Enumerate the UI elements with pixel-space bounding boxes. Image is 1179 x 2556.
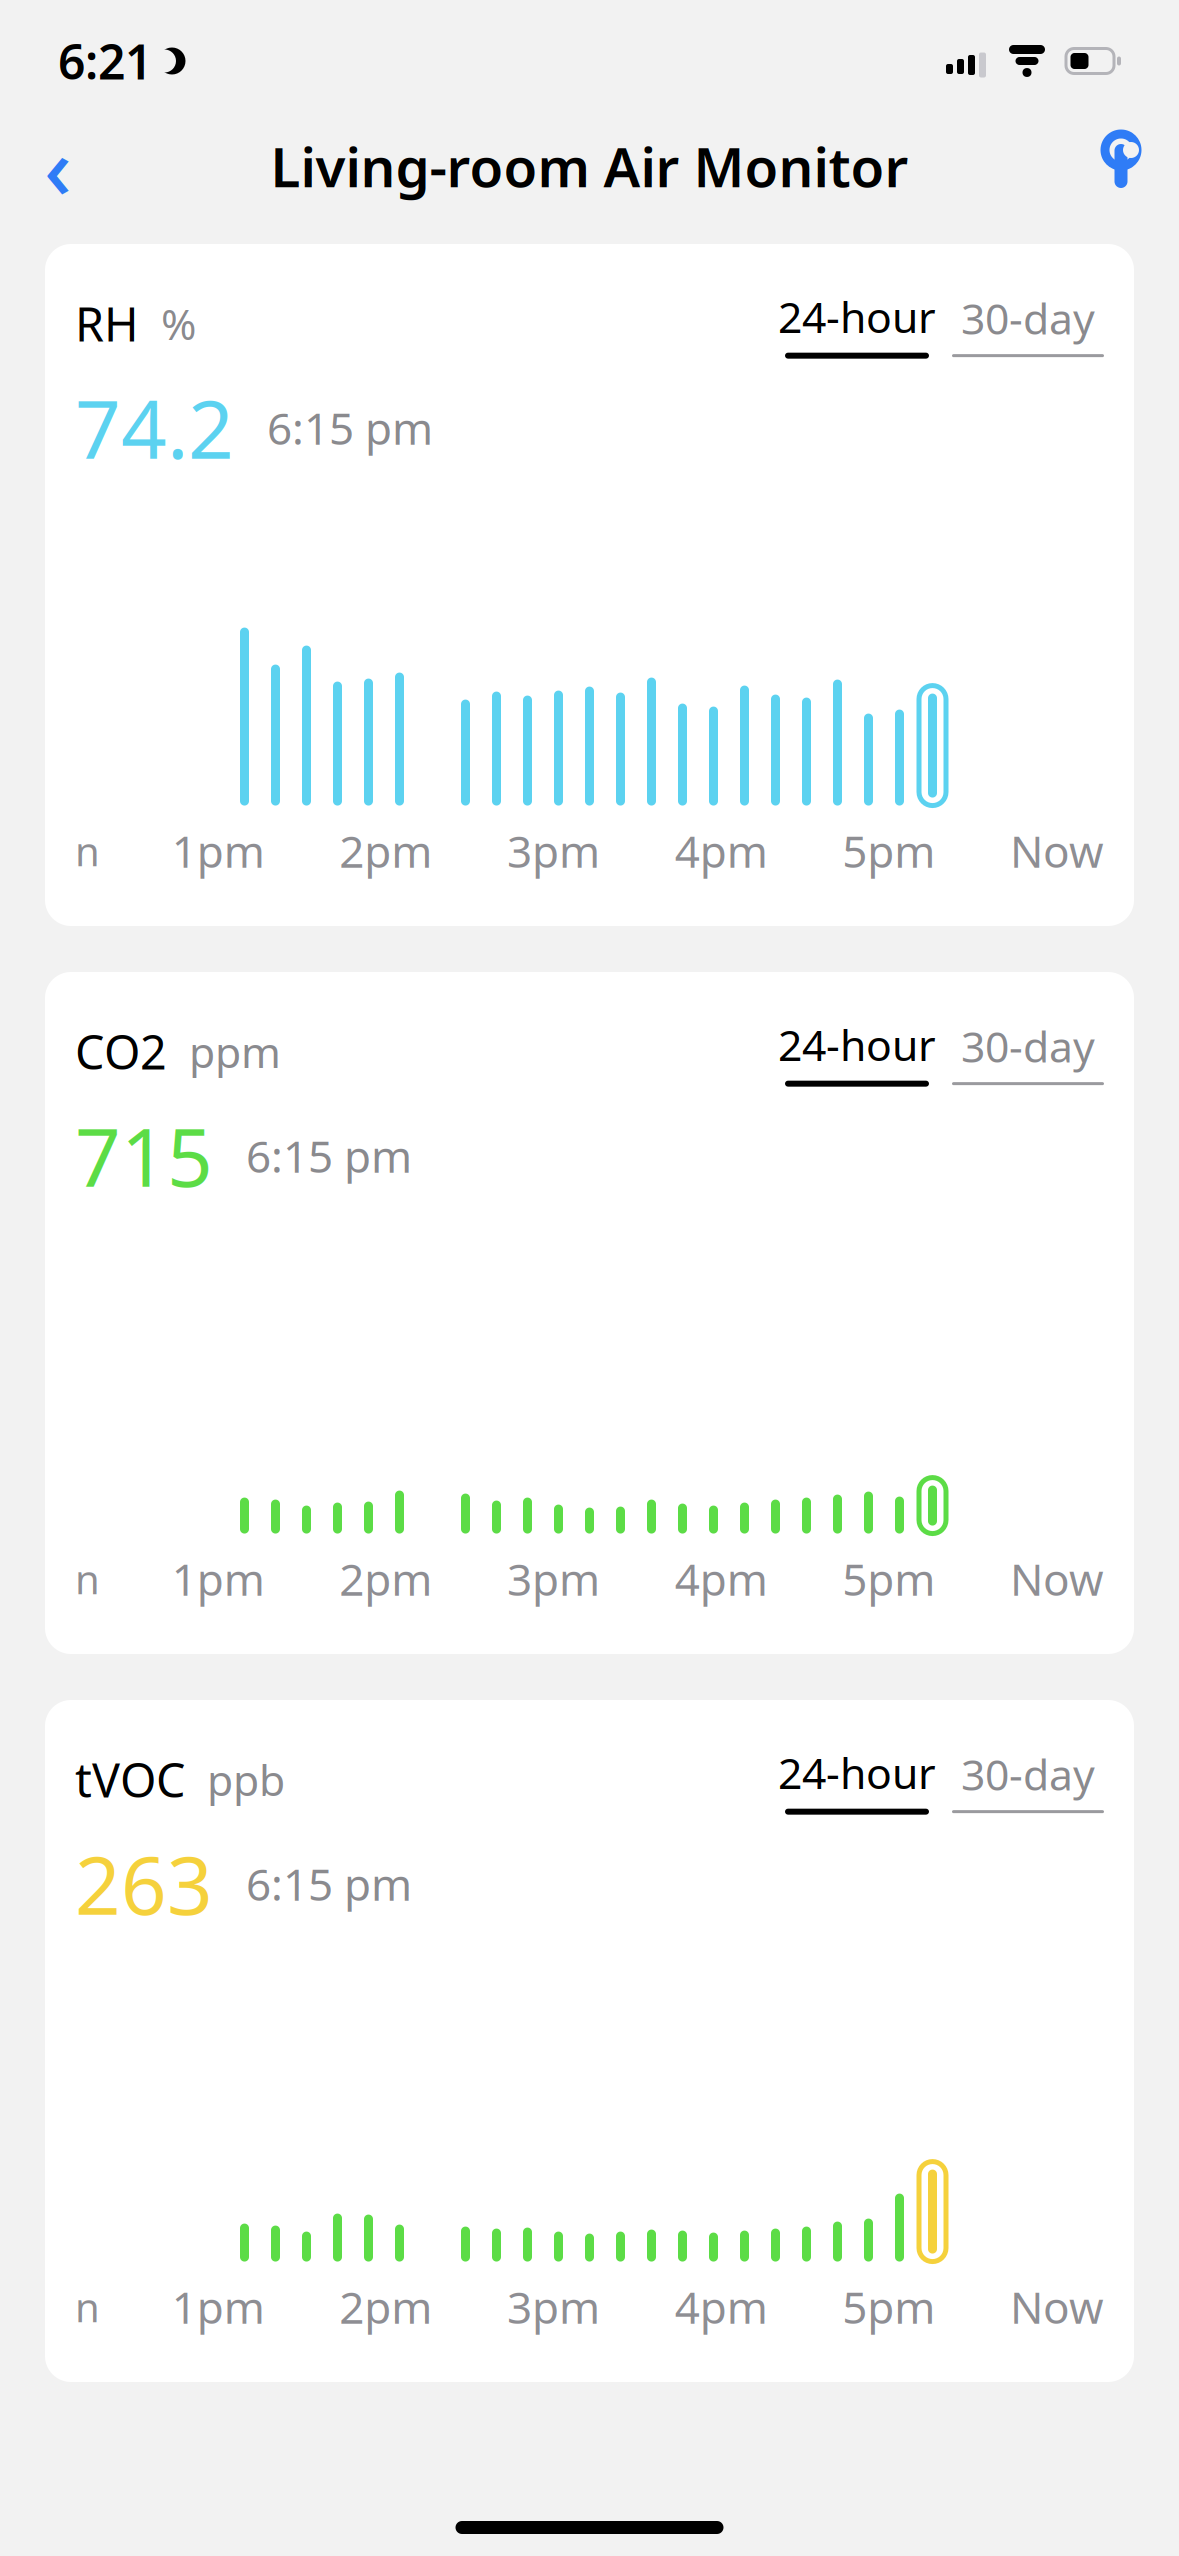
staticText: 74.2 xyxy=(75,375,234,481)
staticText: Now xyxy=(1010,1550,1104,1608)
staticText: 5pm xyxy=(842,822,935,880)
button[interactable]: 30-day xyxy=(952,1745,1104,1813)
staticText: ppm xyxy=(167,1023,281,1080)
staticText: 1pm xyxy=(172,822,265,880)
staticText: CO2 xyxy=(75,1020,167,1082)
staticText: 2pm xyxy=(339,1550,432,1608)
staticText: Now xyxy=(1010,822,1104,880)
staticText: tVOC xyxy=(75,1748,185,1810)
staticText: n xyxy=(75,824,100,877)
staticText: RH xyxy=(75,292,139,354)
staticText: 3pm xyxy=(507,822,600,880)
staticText: ppb xyxy=(185,1751,285,1808)
staticText: 6:15 pm xyxy=(234,399,433,457)
staticText: 3pm xyxy=(507,2278,600,2336)
staticText: 6:21 xyxy=(58,29,152,93)
staticText: 6:15 pm xyxy=(213,1127,412,1185)
button[interactable]: 24-hour xyxy=(778,1744,936,1815)
staticText: 5pm xyxy=(842,1550,935,1608)
staticText: 30-day xyxy=(961,1017,1095,1074)
staticText: 263 xyxy=(75,1831,213,1937)
staticText: 24-hour xyxy=(778,1016,936,1073)
button[interactable]: Settings xyxy=(1089,123,1153,209)
button[interactable]: 24-hour xyxy=(778,1016,936,1087)
staticText: 6:15 pm xyxy=(213,1855,412,1913)
staticText: 24-hour xyxy=(778,288,936,345)
button[interactable]: 24-hour xyxy=(778,288,936,359)
staticText: n xyxy=(75,1552,100,1605)
staticText: 2pm xyxy=(339,2278,432,2336)
staticText: Living-room Air Monitor xyxy=(270,130,908,202)
button[interactable]: 30-day xyxy=(952,1017,1104,1085)
staticText: 24-hour xyxy=(778,1744,936,1801)
staticText: 4pm xyxy=(675,2278,768,2336)
staticText: 3pm xyxy=(507,1550,600,1608)
staticText: 715 xyxy=(75,1103,213,1209)
staticText: % xyxy=(139,295,196,352)
staticText: 4pm xyxy=(675,1550,768,1608)
button[interactable]: 30-day xyxy=(952,289,1104,357)
staticText: 30-day xyxy=(961,289,1095,346)
staticText: 5pm xyxy=(842,2278,935,2336)
staticText: n xyxy=(75,2280,100,2333)
staticText: 1pm xyxy=(172,1550,265,1608)
staticText: 30-day xyxy=(961,1745,1095,1802)
button[interactable]: Back xyxy=(26,123,90,209)
staticText: ‹ xyxy=(44,109,72,223)
staticText: 1pm xyxy=(172,2278,265,2336)
staticText: Now xyxy=(1010,2278,1104,2336)
staticText: 2pm xyxy=(339,822,432,880)
staticText: 4pm xyxy=(675,822,768,880)
